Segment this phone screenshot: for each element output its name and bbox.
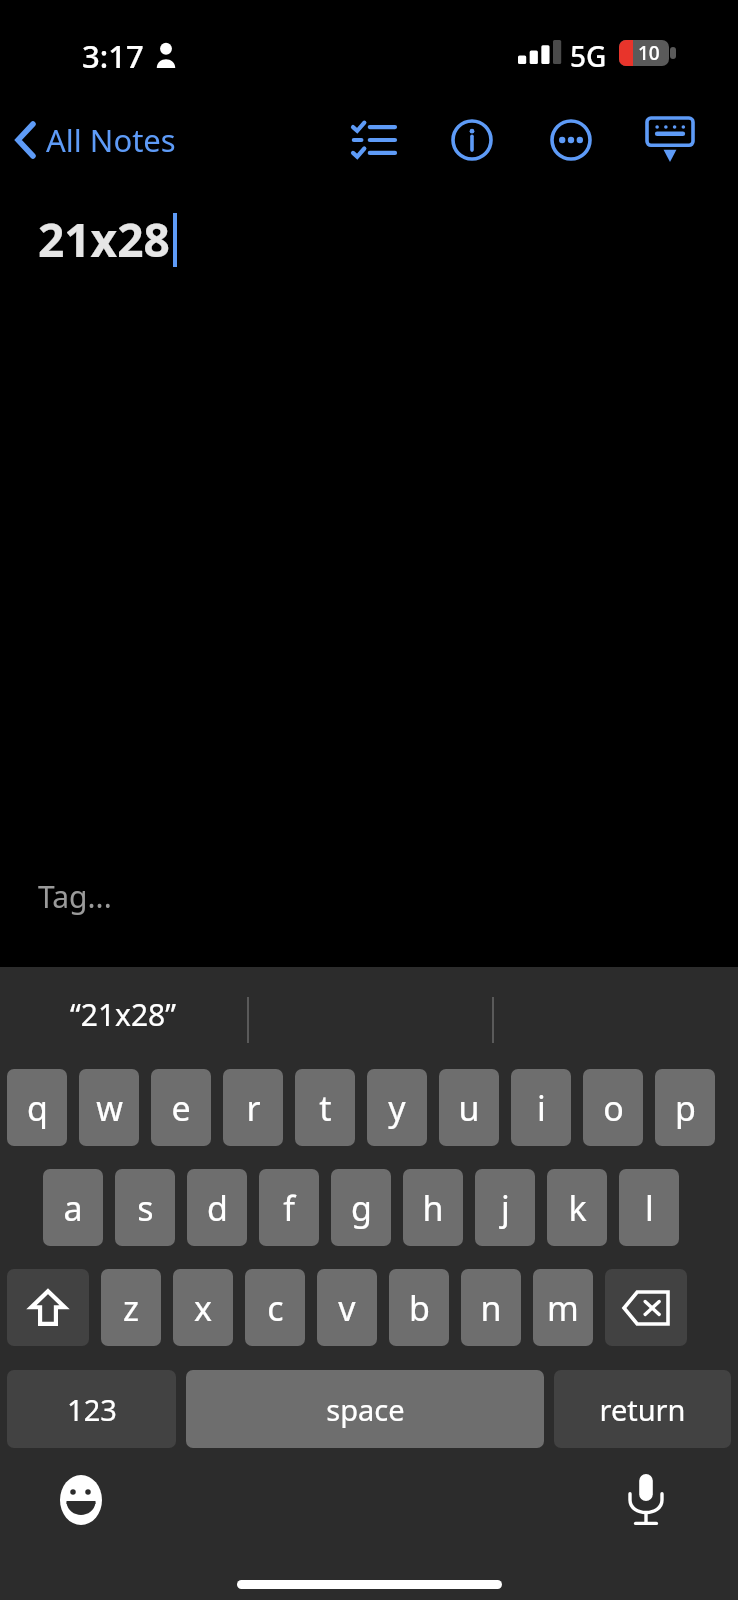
button[interactable]: j xyxy=(475,1169,535,1246)
staticText: space xyxy=(326,1390,405,1429)
button[interactable]: Hide Keyboard xyxy=(636,108,704,172)
staticText: k xyxy=(568,1185,587,1231)
button[interactable]: 123 xyxy=(7,1370,176,1448)
staticText: h xyxy=(422,1185,444,1231)
button[interactable]: Backspace xyxy=(605,1269,687,1346)
button[interactable]: Checklist xyxy=(340,108,408,172)
button[interactable]: a xyxy=(43,1169,103,1246)
staticText: All Notes xyxy=(46,119,176,161)
button[interactable]: s xyxy=(115,1169,175,1246)
staticText: d xyxy=(207,1185,228,1231)
button[interactable]: t xyxy=(295,1069,355,1146)
button[interactable]: Info xyxy=(438,108,506,172)
button[interactable]: z xyxy=(101,1269,161,1346)
staticText: i xyxy=(537,1085,546,1131)
button[interactable]: return xyxy=(554,1370,731,1448)
button[interactable]: w xyxy=(79,1069,139,1146)
button[interactable]: g xyxy=(331,1169,391,1246)
button[interactable]: m xyxy=(533,1269,593,1346)
staticText: “21x28” xyxy=(70,994,177,1035)
staticText: c xyxy=(267,1285,284,1331)
staticText: m xyxy=(547,1285,579,1331)
button[interactable]: space xyxy=(186,1370,544,1448)
staticText: w xyxy=(96,1085,123,1131)
button[interactable]: u xyxy=(439,1069,499,1146)
button[interactable]: v xyxy=(317,1269,377,1346)
staticText: a xyxy=(63,1185,83,1231)
button[interactable]: r xyxy=(223,1069,283,1146)
staticText: 123 xyxy=(67,1390,117,1429)
button[interactable]: e xyxy=(151,1069,211,1146)
button[interactable]: k xyxy=(547,1169,607,1246)
staticText: x xyxy=(194,1285,212,1331)
button[interactable]: Dictation xyxy=(613,1467,679,1533)
button[interactable]: x xyxy=(173,1269,233,1346)
staticText: 5G xyxy=(570,37,607,75)
staticText: g xyxy=(351,1185,372,1231)
staticText: Tag... xyxy=(38,876,112,917)
staticText: y xyxy=(388,1085,406,1131)
button[interactable]: i xyxy=(511,1069,571,1146)
staticText: e xyxy=(171,1085,191,1131)
staticText: o xyxy=(603,1085,624,1131)
staticText: p xyxy=(675,1085,696,1131)
button[interactable]: c xyxy=(245,1269,305,1346)
button[interactable]: l xyxy=(619,1169,679,1246)
button[interactable]: All Notes xyxy=(10,113,182,167)
button[interactable]: b xyxy=(389,1269,449,1346)
staticText: 10 xyxy=(638,40,660,66)
staticText: v xyxy=(338,1285,356,1331)
button[interactable]: q xyxy=(7,1069,67,1146)
staticText: 3:17 xyxy=(82,35,144,77)
staticText: u xyxy=(458,1085,480,1131)
staticText: q xyxy=(27,1085,48,1131)
button[interactable]: h xyxy=(403,1169,463,1246)
button[interactable]: n xyxy=(461,1269,521,1346)
staticText: l xyxy=(645,1185,654,1231)
staticText: s xyxy=(137,1185,154,1231)
staticText: return xyxy=(599,1390,686,1429)
button[interactable]: p xyxy=(655,1069,715,1146)
staticText: f xyxy=(283,1185,295,1231)
staticText: n xyxy=(480,1285,502,1331)
staticText: t xyxy=(319,1085,332,1131)
button[interactable]: Shift xyxy=(7,1269,89,1346)
button[interactable]: “21x28” xyxy=(0,967,247,1062)
staticText: b xyxy=(409,1285,430,1331)
button[interactable]: o xyxy=(583,1069,643,1146)
button[interactable]: y xyxy=(367,1069,427,1146)
staticText: j xyxy=(501,1185,510,1231)
staticText: 21x28 xyxy=(38,208,170,271)
button[interactable]: d xyxy=(187,1169,247,1246)
staticText: z xyxy=(123,1285,139,1331)
staticText: r xyxy=(246,1085,261,1131)
button[interactable]: More xyxy=(537,108,605,172)
button[interactable]: f xyxy=(259,1169,319,1246)
button[interactable]: Emoji xyxy=(48,1467,114,1533)
